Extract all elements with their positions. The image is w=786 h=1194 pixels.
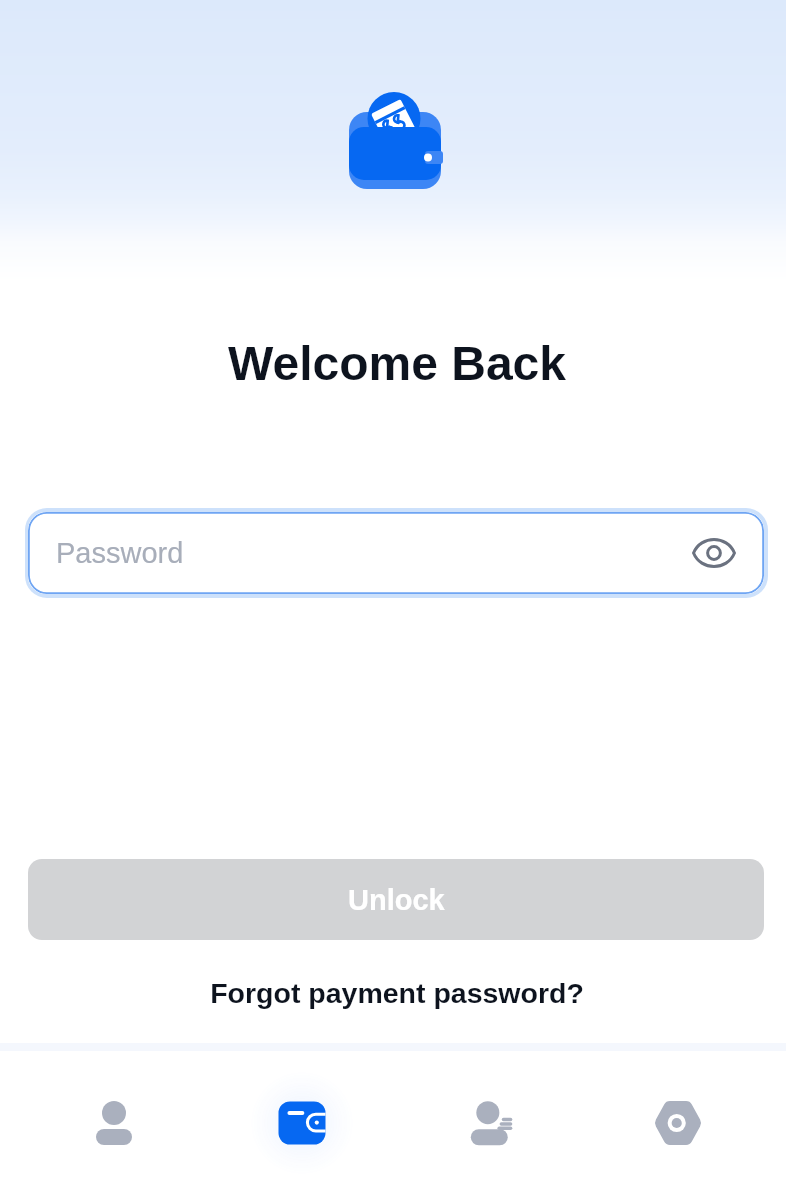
staticText: Unlock <box>348 884 445 916</box>
button[interactable]: Forgot payment password? <box>204 969 590 1017</box>
staticText: Welcome Back <box>4 337 786 391</box>
button[interactable]: Contacts <box>396 1051 584 1194</box>
button[interactable]: Password <box>28 512 764 594</box>
button[interactable]: Profile <box>20 1051 208 1194</box>
button[interactable]: Settings <box>584 1051 772 1194</box>
button[interactable]: Unlock <box>28 859 764 940</box>
button[interactable]: Show password <box>684 523 744 583</box>
staticText: Password <box>56 537 184 569</box>
staticText: Forgot payment password? <box>210 977 584 1009</box>
button[interactable]: Wallet <box>208 1051 396 1194</box>
